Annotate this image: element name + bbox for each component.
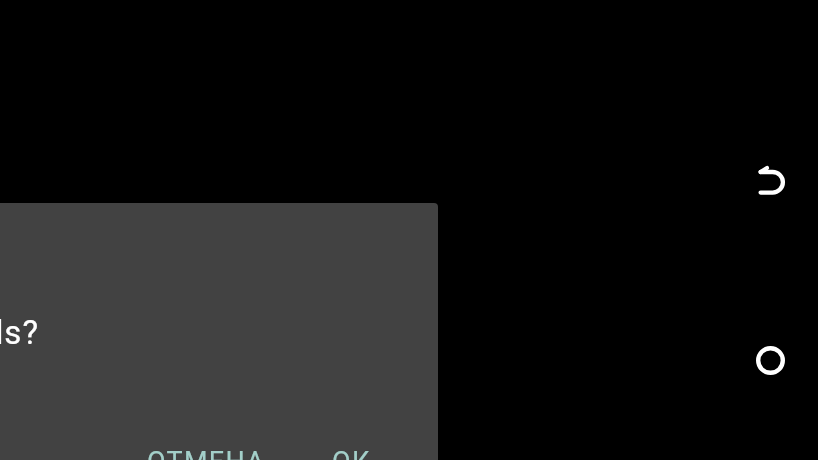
button[interactable]: ОК xyxy=(318,435,385,460)
button[interactable]: Home xyxy=(746,336,794,384)
button[interactable]: Back xyxy=(746,156,796,206)
staticText: ОТМЕНА xyxy=(147,446,266,460)
button[interactable]: ОТМЕНА xyxy=(133,435,280,460)
staticText: Do you really want to delete all downloa… xyxy=(0,313,39,352)
staticText: ОК xyxy=(332,446,371,460)
